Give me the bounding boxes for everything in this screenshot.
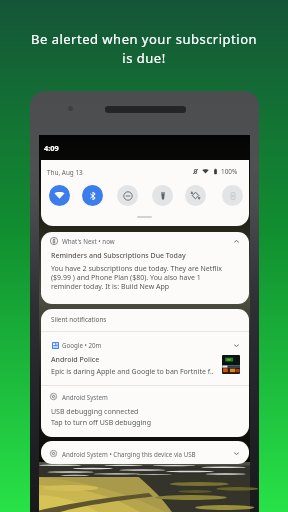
button[interactable]: Battery saver bbox=[222, 185, 243, 206]
staticText: Thu, Aug 13 bbox=[47, 168, 83, 177]
staticText: Silent notifications bbox=[51, 315, 107, 324]
staticText: Android System • Charging this device vi… bbox=[62, 450, 196, 458]
button[interactable]: Wi-Fi bbox=[49, 185, 70, 206]
other: Expand bbox=[233, 450, 240, 457]
button[interactable]: Flashlight bbox=[152, 185, 173, 206]
button[interactable]: What's Next • now bbox=[41, 232, 249, 304]
staticText: You have 2 subscriptions due today. They… bbox=[51, 264, 229, 291]
other: Collapse bbox=[233, 238, 240, 245]
staticText: What's Next • now bbox=[62, 237, 115, 245]
staticText: Epic is daring Apple and Google to ban F… bbox=[51, 367, 221, 377]
staticText: Google • 20m bbox=[62, 341, 102, 349]
staticText: 4:09 bbox=[44, 143, 59, 153]
other: Expand bbox=[233, 342, 240, 349]
button[interactable]: Google • 20m bbox=[41, 332, 249, 385]
button[interactable]: Android System • Charging this device vi… bbox=[41, 441, 249, 464]
button[interactable]: Do not disturb bbox=[117, 185, 138, 206]
staticText: 100% bbox=[221, 167, 238, 176]
button[interactable]: Silent notifications bbox=[41, 309, 249, 331]
button[interactable]: Auto rotate bbox=[185, 185, 206, 206]
staticText: Android Police bbox=[51, 355, 100, 365]
button[interactable]: Bluetooth bbox=[82, 185, 103, 206]
staticText: Android System bbox=[62, 393, 108, 401]
staticText: Tap to turn off USB debugging bbox=[51, 418, 151, 428]
button[interactable]: Android System bbox=[41, 386, 249, 437]
staticText: Be alerted when your subscription is due… bbox=[28, 30, 260, 67]
staticText: Reminders and Subscriptions Due Today bbox=[51, 251, 186, 261]
staticText: USB debugging connected bbox=[51, 407, 139, 417]
